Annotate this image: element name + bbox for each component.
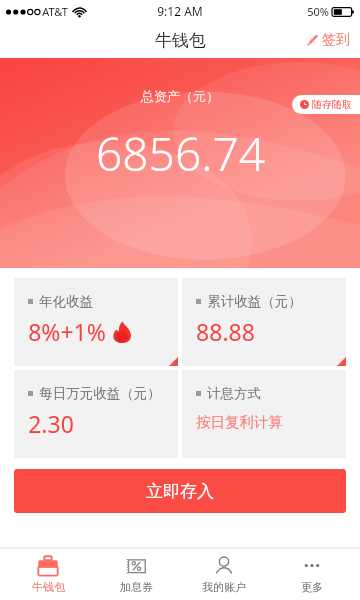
staticText: 我的账户 (202, 580, 246, 594)
button[interactable]: 牛钱包 (8, 548, 88, 600)
button[interactable]: 计息方式 (182, 370, 346, 458)
button[interactable]: 立即存入 (14, 469, 346, 513)
staticText: 每日万元收益（元） (39, 385, 161, 402)
staticText: 立即存入 (146, 481, 214, 502)
staticText: 2.30 (28, 408, 74, 439)
button[interactable]: 更多 (272, 548, 352, 600)
staticText: 88.88 (196, 316, 255, 347)
staticText: AT&T (42, 4, 68, 19)
staticText: 签到 (322, 31, 350, 49)
staticText: 按日复利计算 (196, 413, 283, 431)
button[interactable]: 我的账户 (184, 548, 264, 600)
other: 加息券 (125, 555, 147, 577)
button[interactable]: 每日万元收益（元） (14, 370, 178, 458)
staticText: 50% (307, 4, 329, 19)
staticText: 计息方式 (207, 385, 261, 402)
staticText: 牛钱包 (32, 580, 65, 594)
staticText: 8%+1% (28, 316, 106, 347)
staticText: 随存随取 (312, 98, 352, 111)
staticText: 加息券 (120, 580, 153, 594)
staticText: 年化收益 (39, 293, 93, 310)
other: 牛钱包 (37, 555, 59, 577)
button[interactable]: 累计收益（元） (182, 278, 346, 366)
other: 更多 (301, 555, 323, 577)
staticText: 6856.74 (96, 122, 265, 185)
button[interactable]: 签到 (296, 27, 360, 53)
button[interactable]: 年化收益 (14, 278, 178, 366)
staticText: 更多 (301, 580, 323, 594)
button[interactable]: 加息券 (96, 548, 176, 600)
staticText: 总资产（元） (141, 88, 219, 104)
staticText: 9:12 AM (157, 3, 203, 19)
other: 我的账户 (213, 555, 235, 577)
staticText: 累计收益（元） (207, 293, 302, 310)
staticText: 牛钱包 (155, 30, 206, 51)
button[interactable]: 随存随取 (292, 95, 360, 114)
